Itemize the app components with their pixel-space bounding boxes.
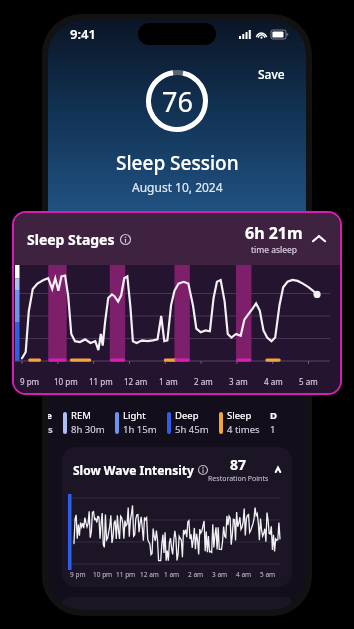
staticText: 3 am	[229, 376, 248, 387]
staticText: 1 am	[159, 376, 178, 387]
staticText: Slow Wave Intensity	[73, 462, 194, 478]
button[interactable]: Collapse	[311, 231, 327, 247]
staticText: Deep	[175, 409, 199, 422]
staticText: 10 pm	[93, 570, 113, 579]
staticText: 9 pm	[20, 376, 40, 387]
staticText: 12 am	[140, 570, 159, 579]
staticText: 4 am	[236, 570, 252, 579]
staticText: Restoration Points	[208, 474, 269, 484]
staticText: 5h 45m	[175, 423, 209, 436]
staticText: Save	[258, 66, 285, 82]
staticText: August 10, 2024	[132, 179, 223, 195]
staticText: Sleep Assist	[227, 409, 260, 422]
staticText: 76	[162, 83, 193, 120]
button[interactable]: Deep	[167, 409, 219, 436]
button[interactable]: Slow Wave Intensity	[62, 447, 292, 587]
button[interactable]: Light	[115, 409, 167, 436]
staticText: 4 times	[227, 423, 260, 436]
staticText: time asleep	[251, 244, 298, 256]
staticText: 4 am	[264, 376, 283, 387]
staticText: 5 am	[299, 376, 318, 387]
staticText: 10 pm	[54, 376, 78, 387]
staticText: 87	[230, 455, 247, 474]
staticText: Awake	[48, 409, 52, 422]
staticText: REM	[71, 409, 91, 422]
button[interactable]: Save	[254, 62, 289, 86]
staticText: 1 am	[164, 570, 180, 579]
staticText: 12 am	[124, 376, 148, 387]
button[interactable]: Collapse	[275, 463, 281, 477]
staticText: 9 pm	[70, 570, 86, 579]
staticText: 6h 21m	[245, 222, 303, 244]
staticText: 11 pm	[89, 376, 113, 387]
staticText: 3 am	[212, 570, 228, 579]
staticText: Sleep Session	[116, 150, 239, 176]
staticText: 1h 15m	[123, 423, 157, 436]
staticText: 8h 30m	[71, 423, 105, 436]
button[interactable]: Awake	[48, 409, 63, 436]
staticText: Light	[123, 409, 146, 422]
staticText: 24m 1s	[48, 423, 53, 436]
staticText: 5 am	[260, 570, 276, 579]
button[interactable]: Sleep Stages	[14, 213, 340, 393]
staticText: 2 am	[188, 570, 204, 579]
staticText: Sleep Stages	[27, 230, 115, 249]
button[interactable]: Sleep Assist	[219, 409, 270, 436]
staticText: 11 pm	[116, 570, 136, 579]
staticText: 9:41	[70, 25, 96, 43]
staticText: 2 am	[194, 376, 213, 387]
button[interactable]: REM	[63, 409, 115, 436]
